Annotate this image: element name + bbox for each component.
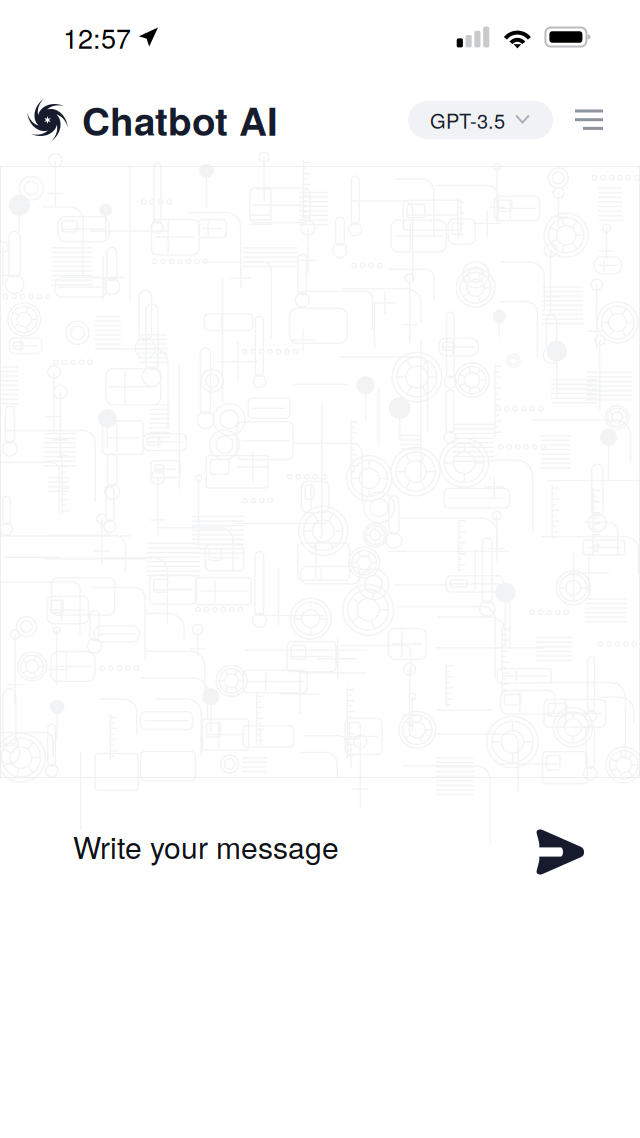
staticText: Chatbot AI (82, 92, 278, 148)
staticText: GPT-3.5 (430, 106, 505, 134)
staticText: Write your message (73, 824, 339, 867)
button[interactable]: GPT-3.5 (408, 101, 553, 139)
button[interactable]: Menu (553, 98, 625, 142)
button[interactable]: Write your message (0, 778, 640, 920)
staticText: 12:57 (63, 18, 131, 56)
